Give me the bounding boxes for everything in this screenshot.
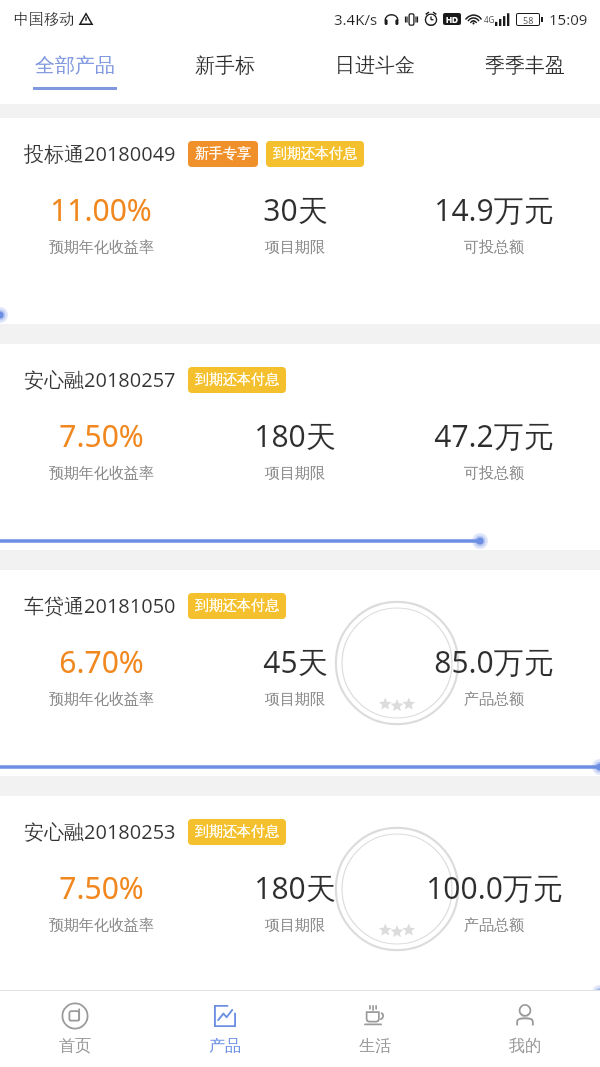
staticText: 预期年化收益率	[49, 238, 154, 257]
staticText: 产品总额	[464, 916, 524, 935]
staticText: 项目期限	[265, 690, 325, 709]
staticText: 7.50%	[59, 415, 144, 456]
staticText: 项目期限	[265, 464, 325, 483]
staticText: 7.50%	[59, 867, 144, 908]
staticText: 47.2万元	[434, 415, 554, 456]
staticText: 安心融20180253	[24, 818, 176, 845]
staticText: 100.0万元	[426, 867, 563, 908]
staticText: 项目期限	[265, 916, 325, 935]
staticText: 车贷通20181050	[24, 592, 176, 619]
button[interactable]: 产品	[150, 991, 300, 1067]
staticText: 到期还本付息	[195, 597, 279, 615]
staticText: 预期年化收益率	[49, 690, 154, 709]
button[interactable]: 安心融20180257	[0, 344, 600, 550]
staticText: 可投总额	[464, 464, 524, 483]
staticText: 中国移动	[14, 10, 74, 29]
staticText: 全部产品	[35, 53, 115, 78]
staticText: HD	[446, 14, 458, 25]
staticText: 4G	[484, 14, 495, 25]
staticText: 14.9万元	[434, 189, 554, 230]
staticText: 58	[523, 14, 534, 25]
button[interactable]: 全部产品	[0, 38, 150, 104]
staticText: 项目期限	[265, 238, 325, 257]
staticText: 可投总额	[464, 238, 524, 257]
staticText: 日进斗金	[335, 53, 415, 78]
staticText: 180天	[254, 415, 336, 456]
staticText: 季季丰盈	[485, 53, 565, 78]
button[interactable]: 我的	[450, 991, 600, 1067]
staticText: 30天	[263, 189, 328, 230]
button[interactable]: 日进斗金	[300, 38, 450, 104]
button[interactable]: 安心融20180253	[0, 796, 600, 1002]
staticText: 新手标	[195, 53, 255, 78]
button[interactable]: 新手标	[150, 38, 300, 104]
staticText: 预期年化收益率	[49, 464, 154, 483]
staticText: 我的	[509, 1036, 541, 1056]
button[interactable]: 车贷通20181050	[0, 570, 600, 776]
staticText: 到期还本付息	[273, 145, 357, 163]
button[interactable]: 首页	[0, 991, 150, 1067]
staticText: 180天	[254, 867, 336, 908]
staticText: 新手专享	[195, 145, 251, 163]
staticText: 投标通20180049	[24, 140, 176, 167]
staticText: 到期还本付息	[195, 371, 279, 389]
staticText: 15:09	[549, 9, 588, 29]
staticText: 45天	[263, 641, 328, 682]
staticText: 产品总额	[464, 690, 524, 709]
staticText: 预期年化收益率	[49, 916, 154, 935]
staticText: 85.0万元	[434, 641, 554, 682]
button[interactable]: 生活	[300, 991, 450, 1067]
staticText: 产品	[209, 1036, 241, 1056]
staticText: 安心融20180257	[24, 366, 176, 393]
staticText: 6.70%	[59, 641, 144, 682]
staticText: 首页	[59, 1036, 91, 1056]
button[interactable]: 季季丰盈	[450, 38, 600, 104]
staticText: 11.00%	[50, 189, 152, 230]
staticText: 生活	[359, 1036, 391, 1056]
staticText: 3.4K/s	[334, 9, 378, 29]
button[interactable]: 投标通20180049	[0, 118, 600, 324]
staticText: 到期还本付息	[195, 823, 279, 841]
